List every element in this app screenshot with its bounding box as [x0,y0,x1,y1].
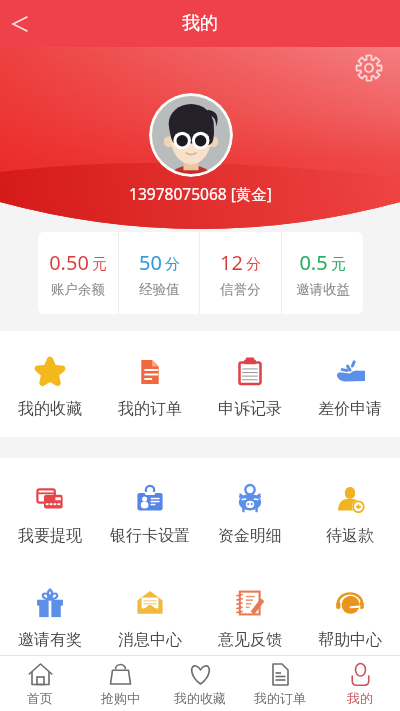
button[interactable]: 50 [119,232,199,314]
button[interactable]: 意见反馈 [200,562,300,668]
staticText: 我要提现 [18,526,82,546]
staticText: 差价申请 [318,399,382,419]
staticText: 我的订单 [118,399,182,419]
staticText: 0.5 [299,249,328,276]
button[interactable]: 我的订单 [240,656,320,711]
staticText: 0.50 [49,249,89,276]
staticText: 分 [246,255,261,274]
staticText: 资金明细 [218,526,282,546]
button[interactable]: 申诉记录 [200,331,300,437]
button[interactable]: 消息中心 [100,562,200,668]
staticText: 我的订单 [254,690,306,706]
button[interactable]: 银行卡设置 [100,458,200,564]
staticText: 意见反馈 [218,630,282,650]
button[interactable]: 我的 [320,656,400,711]
button[interactable]: 0.5 [282,232,363,314]
staticText: 邀请有奖 [18,630,82,650]
button[interactable]: 我的订单 [100,331,200,437]
staticText: 经验值 [139,281,180,298]
button[interactable]: 0.50 [38,232,118,314]
staticText: 元 [92,255,107,274]
button[interactable]: 我要提现 [0,458,100,564]
staticText: 我的收藏 [174,690,226,706]
button[interactable]: 抢购中 [80,656,160,711]
staticText: 我的 [182,12,218,35]
button[interactable]: 我的收藏 [160,656,240,711]
staticText: 待返款 [326,526,374,546]
button[interactable]: 我的收藏 [0,331,100,437]
staticText: 13978075068 [黄金] [129,183,272,204]
staticText: 邀请收益 [296,281,350,298]
staticText: 50 [139,249,162,276]
button[interactable]: 邀请有奖 [0,562,100,668]
button[interactable]: 12 [200,232,281,314]
staticText: 抢购中 [101,690,140,706]
staticText: 我的收藏 [18,399,82,419]
staticText: 分 [165,255,180,274]
staticText: 申诉记录 [218,399,282,419]
staticText: 消息中心 [118,630,182,650]
staticText: 我的 [347,690,373,706]
button[interactable]: 资金明细 [200,458,300,564]
staticText: 首页 [27,690,53,706]
button[interactable]: 待返款 [300,458,400,564]
staticText: 12 [220,249,243,276]
button[interactable]: Back [0,0,42,47]
button[interactable]: 首页 [0,656,80,711]
button[interactable]: Settings [354,53,384,83]
staticText: 元 [331,255,346,274]
button[interactable]: 帮助中心 [300,562,400,668]
button[interactable]: 差价申请 [300,331,400,437]
staticText: 帮助中心 [318,630,382,650]
staticText: 账户余额 [51,281,105,298]
staticText: 银行卡设置 [110,526,190,546]
staticText: 信誉分 [220,281,261,298]
